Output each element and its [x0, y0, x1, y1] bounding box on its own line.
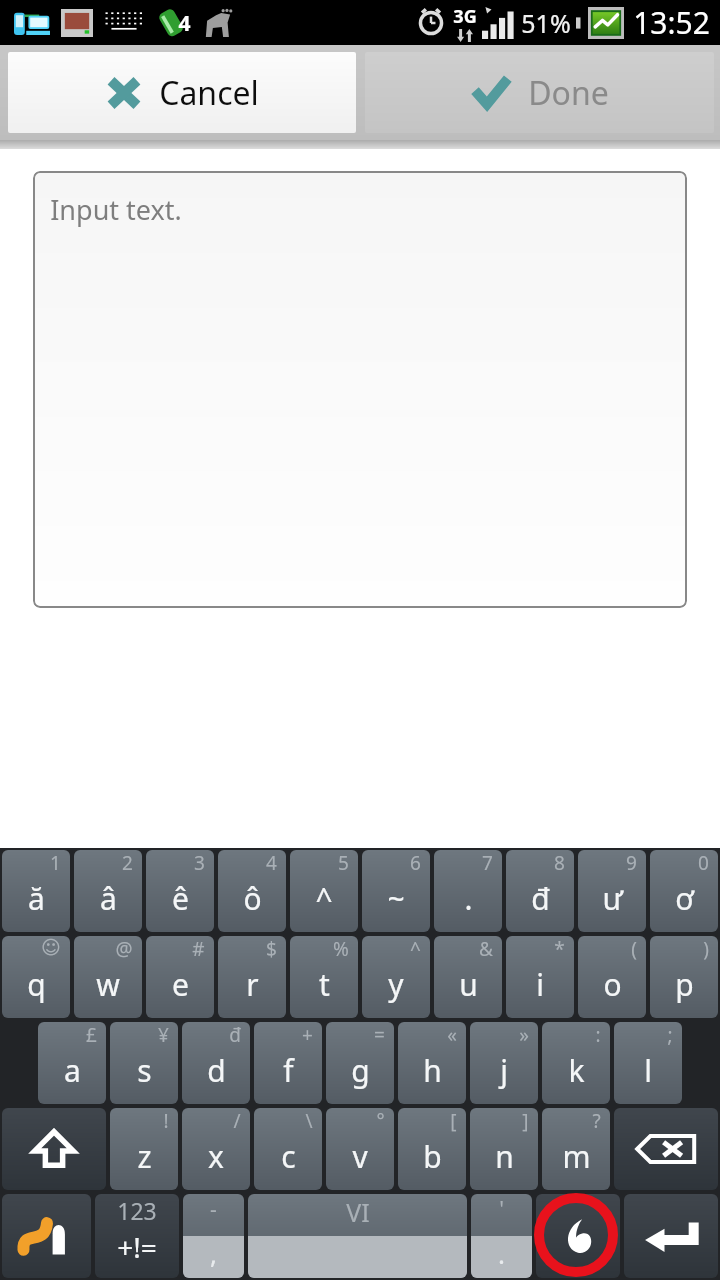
button[interactable]: ^: [362, 936, 430, 1018]
staticText: ¥: [158, 1022, 169, 1048]
staticText: ư: [602, 878, 623, 919]
button[interactable]: ': [471, 1194, 532, 1278]
staticText: £: [86, 1022, 97, 1048]
staticText: â: [100, 878, 117, 919]
button[interactable]: Swype input: [2, 1194, 91, 1278]
button[interactable]: Done: [365, 52, 714, 133]
button[interactable]: =: [326, 1022, 394, 1104]
staticText: 3G: [453, 4, 477, 29]
button[interactable]: »: [470, 1022, 538, 1104]
button[interactable]: Backspace: [614, 1108, 718, 1190]
button[interactable]: [: [398, 1108, 466, 1190]
staticText: đ: [531, 878, 550, 919]
staticText: °: [376, 1108, 385, 1134]
button[interactable]: Shift: [2, 1108, 106, 1190]
staticText: -: [210, 1195, 217, 1224]
button[interactable]: £: [38, 1022, 106, 1104]
staticText: i: [536, 964, 544, 1005]
staticText: [: [450, 1108, 457, 1134]
button[interactable]: Voice input: [536, 1194, 620, 1278]
button[interactable]: ¥: [110, 1022, 178, 1104]
button[interactable]: %: [290, 936, 358, 1018]
staticText: r: [246, 964, 259, 1005]
staticText: ☺: [41, 936, 61, 958]
staticText: \: [305, 1108, 313, 1134]
button[interactable]: 1: [2, 850, 70, 932]
staticText: (: [631, 936, 637, 962]
button[interactable]: 9: [578, 850, 646, 932]
button[interactable]: ]: [470, 1108, 538, 1190]
button[interactable]: &: [434, 936, 502, 1018]
button[interactable]: \: [254, 1108, 322, 1190]
staticText: ?: [592, 1108, 601, 1134]
button[interactable]: °: [326, 1108, 394, 1190]
button[interactable]: ?: [542, 1108, 610, 1190]
staticText: đ: [229, 1022, 241, 1048]
button[interactable]: 4: [218, 850, 286, 932]
staticText: j: [500, 1050, 508, 1091]
button[interactable]: đ: [182, 1022, 250, 1104]
staticText: »: [519, 1022, 529, 1048]
button[interactable]: (: [578, 936, 646, 1018]
staticText: !: [163, 1108, 169, 1134]
staticText: ă: [28, 878, 45, 919]
staticText: 5: [338, 850, 349, 876]
staticText: ô: [243, 878, 262, 919]
staticText: z: [137, 1136, 152, 1177]
button[interactable]: #: [146, 936, 214, 1018]
button[interactable]: 3: [146, 850, 214, 932]
other: Swype input: [19, 1213, 75, 1259]
staticText: w: [96, 964, 120, 1005]
staticText: ơ: [675, 878, 694, 919]
button[interactable]: -: [183, 1194, 244, 1278]
staticText: 1: [50, 850, 61, 876]
button[interactable]: Enter: [624, 1194, 718, 1278]
staticText: «: [447, 1022, 457, 1048]
staticText: s: [137, 1050, 152, 1091]
other: Voice input: [557, 1215, 599, 1257]
staticText: =: [374, 1022, 385, 1048]
staticText: k: [568, 1050, 585, 1091]
button[interactable]: 8: [506, 850, 574, 932]
other: Enter: [644, 1216, 698, 1256]
staticText: .: [498, 1236, 505, 1271]
staticText: $: [266, 936, 277, 962]
staticText: ': [499, 1195, 504, 1224]
button[interactable]: ;: [614, 1022, 682, 1104]
button[interactable]: 6: [362, 850, 430, 932]
button[interactable]: :: [542, 1022, 610, 1104]
staticText: /: [233, 1108, 241, 1134]
staticText: &: [479, 936, 493, 962]
staticText: v: [352, 1136, 368, 1177]
staticText: 13:52: [633, 2, 710, 43]
staticText: e: [172, 964, 189, 1005]
staticText: 51%: [521, 6, 571, 40]
button[interactable]: Cancel: [8, 52, 356, 133]
button[interactable]: 0: [650, 850, 718, 932]
button[interactable]: $: [218, 936, 286, 1018]
button[interactable]: 5: [290, 850, 358, 932]
staticText: t: [319, 964, 330, 1005]
button[interactable]: VI: [248, 1194, 467, 1278]
staticText: ^: [315, 878, 333, 919]
button[interactable]: +: [254, 1022, 322, 1104]
button[interactable]: 123: [95, 1194, 179, 1278]
staticText: n: [495, 1136, 514, 1177]
staticText: u: [459, 964, 478, 1005]
button[interactable]: /: [182, 1108, 250, 1190]
staticText: VI: [346, 1195, 370, 1229]
button[interactable]: @: [74, 936, 142, 1018]
button[interactable]: ☺: [2, 936, 70, 1018]
button[interactable]: 7: [434, 850, 502, 932]
staticText: 0: [698, 850, 709, 876]
button[interactable]: «: [398, 1022, 466, 1104]
button[interactable]: *: [506, 936, 574, 1018]
button[interactable]: Input text.: [33, 171, 687, 608]
staticText: ~: [387, 878, 405, 919]
staticText: :: [595, 1022, 601, 1048]
staticText: #: [192, 936, 205, 962]
button[interactable]: ): [650, 936, 718, 1018]
button[interactable]: 2: [74, 850, 142, 932]
button[interactable]: !: [110, 1108, 178, 1190]
staticText: 3: [194, 850, 205, 876]
